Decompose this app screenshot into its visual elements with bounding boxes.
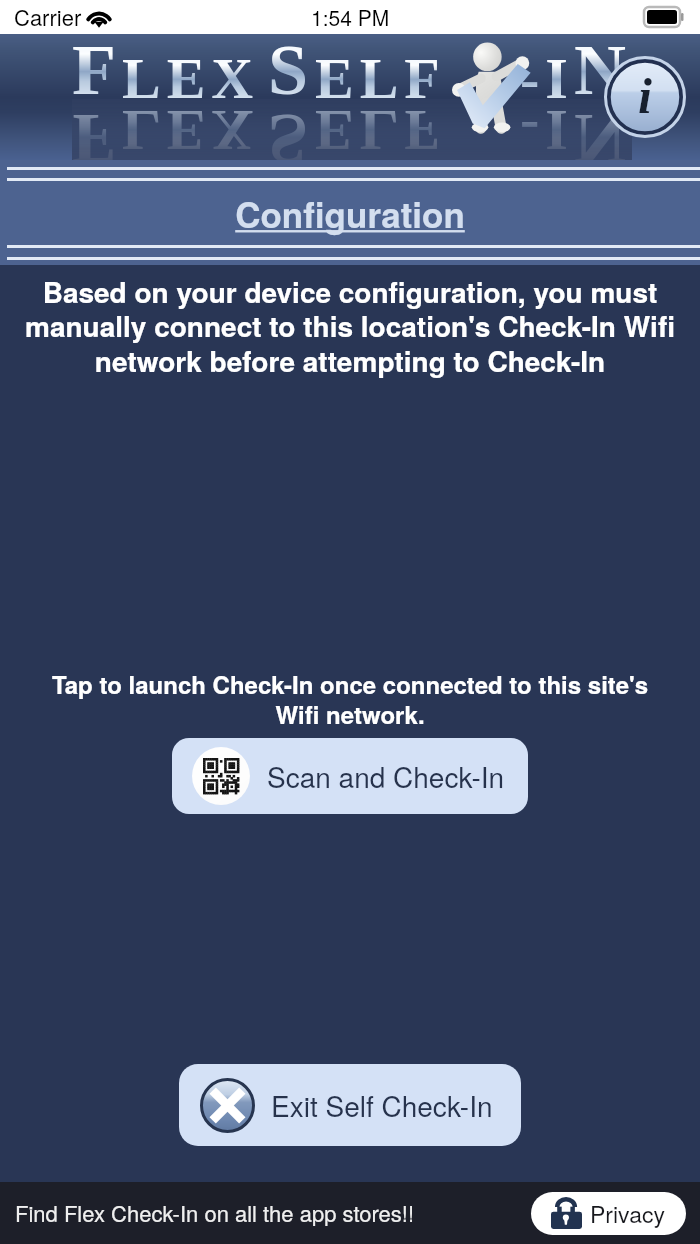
staticText: Find Flex Check-In on all the app stores… <box>15 1197 415 1229</box>
staticText: N <box>574 34 632 110</box>
staticText: Carrier <box>14 1 82 33</box>
staticText: Tap to launch Check-In once connected to… <box>44 667 656 731</box>
staticText: Configuration <box>0 189 700 239</box>
staticText: S <box>268 99 315 160</box>
staticText: LEX <box>122 99 260 160</box>
button[interactable]: Information <box>604 56 686 138</box>
staticText: -I <box>520 99 574 160</box>
staticText: Exit Self Check-In <box>271 1085 493 1125</box>
button[interactable]: Exit Self Check-In <box>179 1064 521 1146</box>
staticText: -I <box>520 46 574 110</box>
staticText: i <box>638 68 652 123</box>
staticText: LEX <box>122 46 260 110</box>
button[interactable]: Privacy <box>531 1192 686 1235</box>
staticText: S <box>268 34 315 110</box>
staticText: Scan and Check-In <box>267 756 505 796</box>
staticText: F <box>72 99 122 160</box>
staticText: ELF <box>315 99 446 160</box>
staticText: N <box>574 99 632 160</box>
button[interactable]: Scan and Check-In <box>172 738 528 814</box>
staticText: Based on your device configuration, you … <box>10 271 690 381</box>
staticText: F <box>72 34 122 110</box>
staticText: ELF <box>315 46 446 110</box>
staticText: Privacy <box>590 1197 665 1230</box>
staticText: 1:54 PM <box>311 2 390 32</box>
